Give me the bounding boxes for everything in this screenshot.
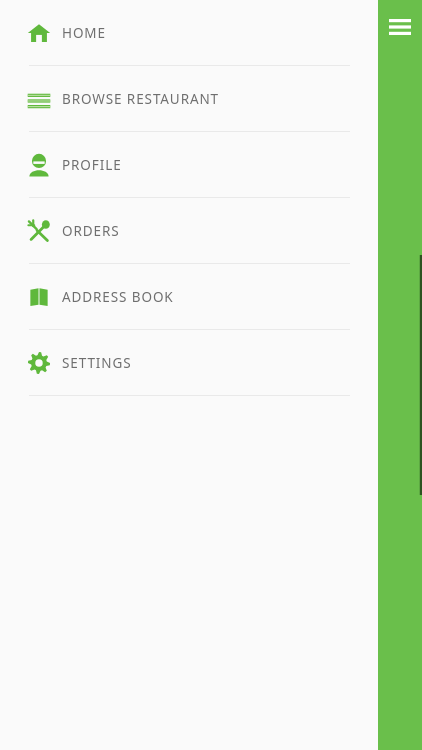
button[interactable]: PROFILE <box>0 132 378 197</box>
staticText: PROFILE <box>62 156 122 174</box>
button[interactable]: ADDRESS BOOK <box>0 264 378 329</box>
staticText: BROWSE RESTAURANT <box>62 90 220 108</box>
staticText: HOME <box>62 24 106 42</box>
button[interactable]: ORDERS <box>0 198 378 263</box>
button[interactable]: BROWSE RESTAURANT <box>0 66 378 131</box>
staticText: ORDERS <box>62 222 120 240</box>
button[interactable]: Open menu <box>382 10 418 44</box>
button[interactable]: SETTINGS <box>0 330 378 395</box>
staticText: ADDRESS BOOK <box>62 288 174 306</box>
button[interactable]: HOME <box>0 0 378 65</box>
staticText: SETTINGS <box>62 354 132 372</box>
